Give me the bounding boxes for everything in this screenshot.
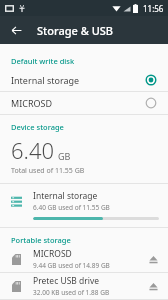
staticText: Storage & USB (37, 23, 114, 38)
staticText: Pretec USB drive (33, 275, 100, 287)
button[interactable]: MICROSD (0, 246, 168, 272)
staticText: 32.00 KB used of 1.88 GB (33, 288, 110, 297)
staticText: 6.40 GB used of 11.55 GB (33, 203, 110, 212)
button[interactable]: Internal storage (0, 184, 168, 227)
button[interactable]: Internal storage (0, 69, 168, 91)
staticText: Default write disk (11, 56, 75, 66)
staticText: Internal storage (33, 190, 98, 202)
staticText: MICROSD (11, 97, 145, 109)
button[interactable]: MICROSD (0, 92, 168, 114)
button[interactable]: Pretec USB drive (0, 273, 168, 299)
staticText: 6.40 (11, 135, 55, 165)
staticText: Total used of 11.55 GB (11, 166, 85, 176)
staticText: Device storage (11, 122, 64, 132)
button[interactable]: Eject (141, 274, 165, 298)
staticText: GB (58, 150, 71, 162)
button[interactable]: Eject (141, 247, 165, 271)
staticText: 11:56 (143, 3, 164, 14)
staticText: 9.44 GB used of 14.89 GB (33, 261, 110, 270)
staticText: Portable storage (11, 235, 71, 245)
staticText: MICROSD (33, 248, 72, 260)
button[interactable]: Back (6, 20, 26, 40)
staticText: Internal storage (11, 74, 145, 86)
